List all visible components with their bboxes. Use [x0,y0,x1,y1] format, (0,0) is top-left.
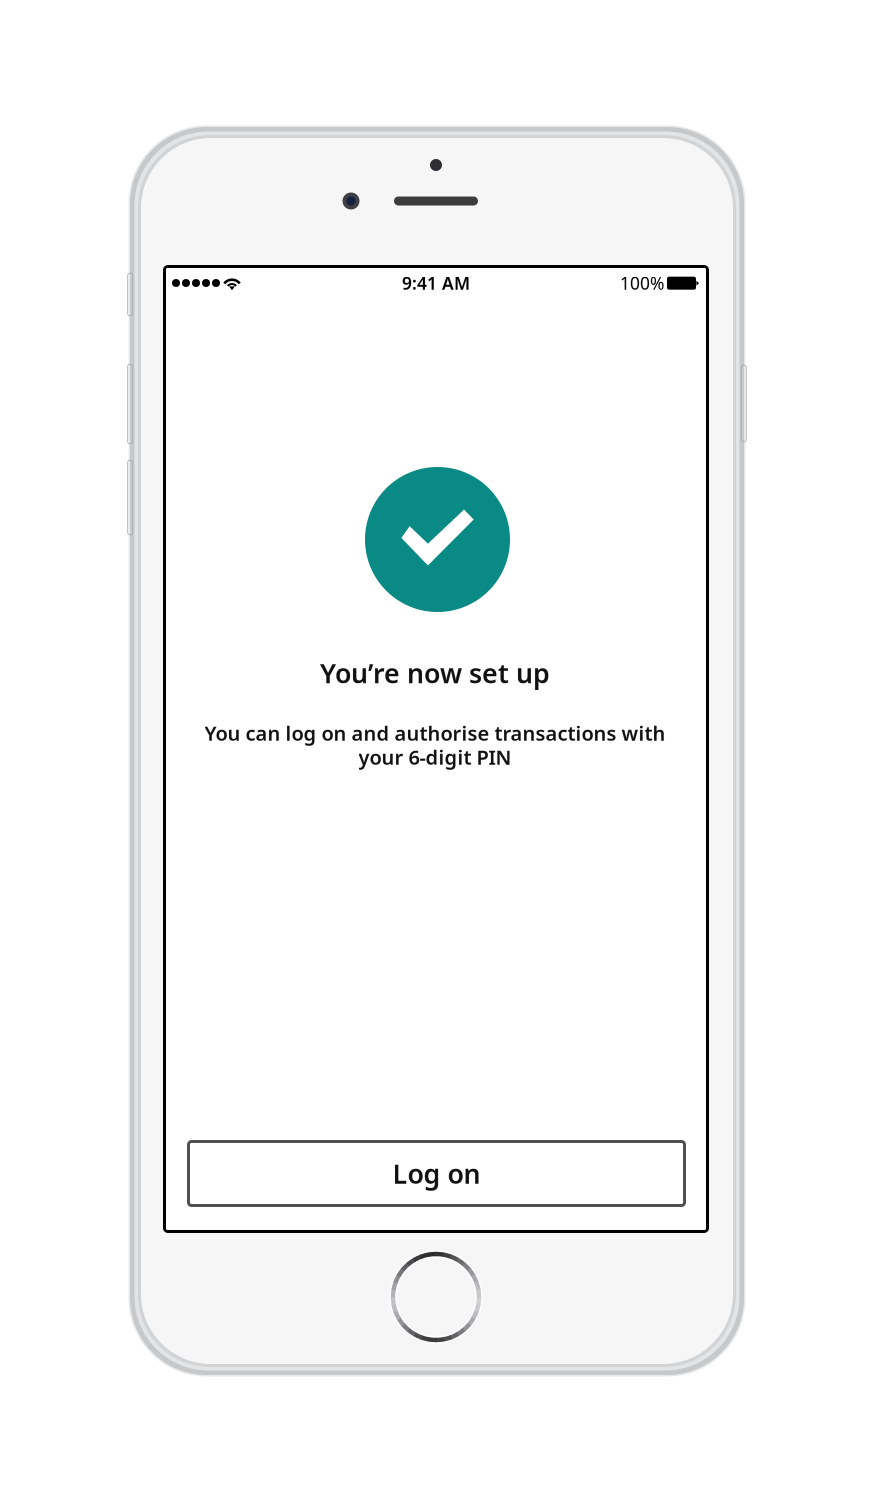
staticText: your 6-digit PIN [358,744,511,770]
staticText: You can log on and authorise transaction… [204,720,665,746]
staticText: You’re now set up [320,655,550,691]
staticText: 9:41 AM [402,271,470,294]
button[interactable]: Log on [188,1141,684,1205]
staticText: 100% [620,271,664,294]
staticText: Log on [392,1156,480,1191]
